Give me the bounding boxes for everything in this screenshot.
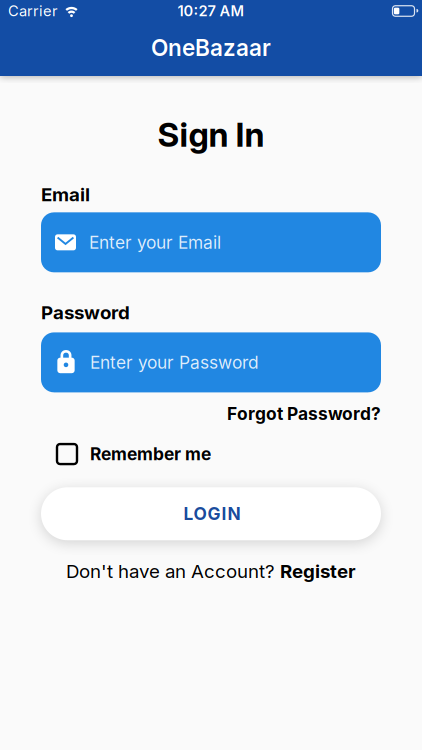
staticText: LOGIN [182,503,239,524]
staticText: OneBazaar [151,34,271,61]
staticText: Email [41,183,90,205]
button[interactable]: Don't have an Account? Register [66,560,356,582]
staticText: 10:27 AM [177,2,244,20]
button[interactable]: LOGIN [41,487,381,540]
staticText: Enter your Email [89,232,221,252]
button[interactable]: Enter your Password [41,332,381,392]
staticText: Enter your Password [90,352,259,372]
button[interactable]: Forgot Password? [227,403,381,424]
staticText: Don't have an Account? Register [66,560,356,582]
staticText: Forgot Password? [227,403,381,424]
staticText: Remember me [90,444,211,464]
button[interactable]: Enter your Email [41,212,381,272]
staticText: Sign In [157,115,264,154]
staticText: Carrier [8,2,58,20]
staticText: Password [41,301,130,323]
button[interactable]: Remember me [41,444,211,464]
